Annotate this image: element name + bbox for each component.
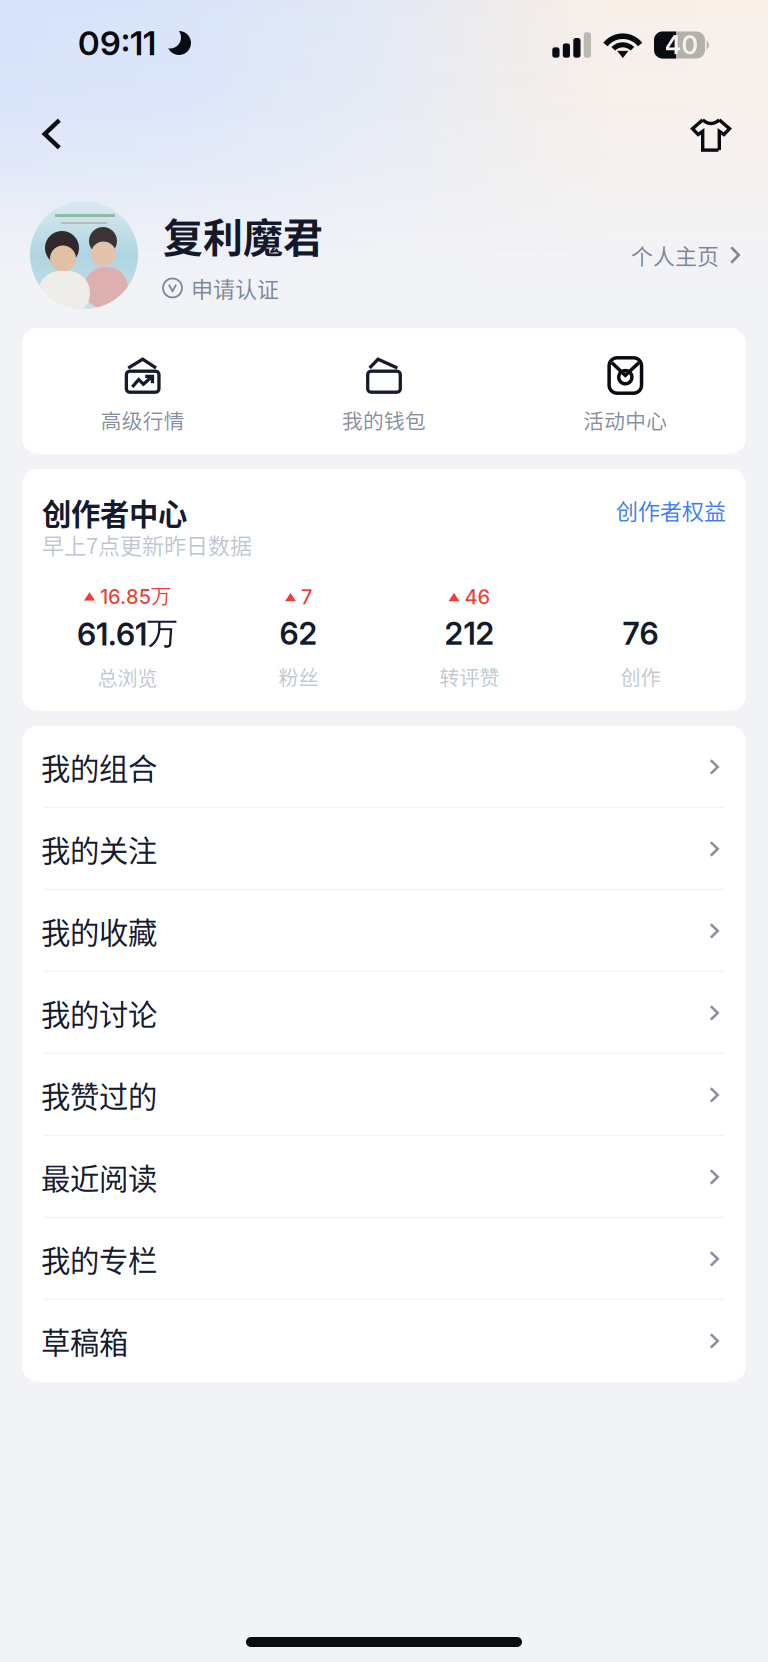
staticText: 创作者中心 xyxy=(42,491,187,533)
button[interactable]: 我的专栏 xyxy=(22,1218,746,1300)
staticText: 早上7点更新昨日数据 xyxy=(42,528,252,560)
staticText: 我的讨论 xyxy=(41,992,157,1034)
staticText: 我赞过的 xyxy=(41,1074,157,1116)
button[interactable]: 我的收藏 xyxy=(22,890,746,972)
staticText: 76 xyxy=(622,615,658,652)
button[interactable]: 高级行情 xyxy=(22,328,263,454)
staticText: 最近阅读 xyxy=(41,1156,157,1198)
button[interactable]: 我的钱包 xyxy=(263,328,505,454)
staticText: 复利魔君 xyxy=(163,206,323,264)
staticText: 09:11 xyxy=(78,23,156,63)
button[interactable]: 周边商城 xyxy=(675,98,747,170)
staticText: 个人主页 xyxy=(631,239,719,271)
button[interactable]: 活动中心 xyxy=(505,328,746,454)
button[interactable]: 我赞过的 xyxy=(22,1054,746,1136)
staticText: 高级行情 xyxy=(101,405,185,435)
staticText: 61.61万 xyxy=(77,614,178,653)
staticText: 活动中心 xyxy=(583,405,667,435)
staticText: 40 xyxy=(664,30,698,60)
staticText: 总浏览 xyxy=(97,663,157,692)
staticText: 转评赞 xyxy=(439,662,499,691)
staticText: 我的收藏 xyxy=(41,910,157,952)
staticText: 粉丝 xyxy=(278,662,318,691)
staticText: 46 xyxy=(464,585,490,609)
button[interactable]: 个人主页 xyxy=(631,239,740,271)
staticText: 16.85万 xyxy=(100,584,171,609)
staticText: 212 xyxy=(444,615,494,652)
button[interactable]: 草稿箱 xyxy=(22,1300,746,1382)
staticText: 我的专栏 xyxy=(41,1238,157,1280)
button[interactable]: 我的组合 xyxy=(22,726,746,808)
button[interactable]: 返回 xyxy=(16,98,88,170)
staticText: 草稿箱 xyxy=(41,1320,128,1362)
staticText: 我的关注 xyxy=(41,828,157,870)
staticText: 我的组合 xyxy=(41,746,157,788)
staticText: 创作者权益 xyxy=(616,494,726,526)
staticText: 62 xyxy=(279,615,317,652)
button[interactable]: 我的讨论 xyxy=(22,972,746,1054)
button[interactable]: 最近阅读 xyxy=(22,1136,746,1218)
button[interactable]: 我的关注 xyxy=(22,808,746,890)
staticText: 申请认证 xyxy=(191,272,279,304)
button[interactable]: 创作者权益 xyxy=(616,494,726,526)
staticText: 7 xyxy=(301,585,312,609)
staticText: 创作 xyxy=(620,662,660,691)
staticText: 我的钱包 xyxy=(342,405,426,435)
